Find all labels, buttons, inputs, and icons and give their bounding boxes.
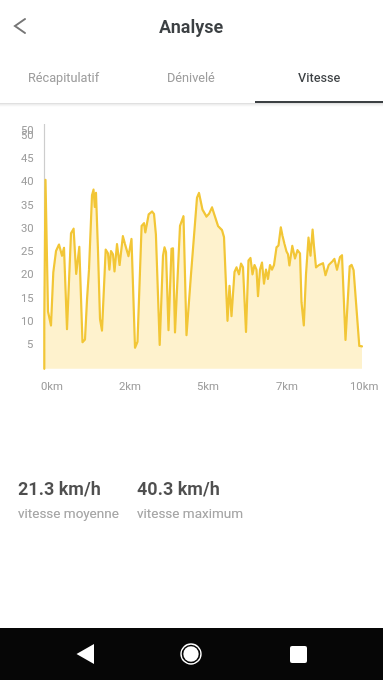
button[interactable]: Vitesse — [255, 56, 383, 104]
staticText: 0km — [41, 380, 63, 393]
staticText: 25 — [21, 245, 34, 258]
staticText: 5 — [27, 338, 34, 351]
staticText: 10 — [21, 315, 34, 328]
staticText: 40.3 km/h — [137, 478, 220, 499]
staticText: 21.3 km/h — [18, 478, 101, 499]
button[interactable] — [281, 634, 315, 674]
staticText: Vitesse — [298, 70, 341, 85]
staticText: 15 — [21, 292, 34, 305]
staticText: 5km — [197, 380, 219, 393]
staticText: Récapitulatif — [28, 70, 100, 85]
staticText: 20 — [21, 268, 34, 281]
staticText: 40 — [21, 175, 34, 188]
button[interactable]: Récapitulatif — [0, 56, 127, 104]
staticText: 30 — [21, 222, 34, 235]
staticText: 45 — [21, 152, 34, 165]
staticText: Analyse — [159, 16, 224, 37]
staticText: vitesse maximum — [137, 505, 244, 521]
button[interactable] — [68, 634, 102, 674]
staticText: 7km — [276, 380, 298, 393]
staticText: 35 — [21, 199, 34, 212]
staticText: 50 — [21, 124, 34, 137]
staticText: 10km — [350, 380, 379, 393]
button[interactable] — [174, 634, 208, 674]
staticText: 50 — [21, 129, 34, 142]
staticText: Dénivelé — [167, 70, 215, 85]
staticText: 2km — [119, 380, 141, 393]
staticText: vitesse moyenne — [18, 505, 119, 521]
button[interactable]: Dénivelé — [127, 56, 255, 104]
button[interactable] — [3, 11, 37, 41]
